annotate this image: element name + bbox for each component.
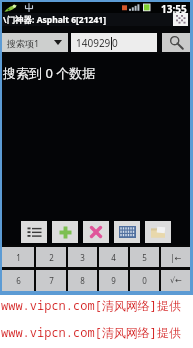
button[interactable]: 1 [2, 247, 34, 267]
button[interactable]: 4 [99, 247, 128, 267]
staticText: \门神器: Asphalt 6[21241] [3, 14, 106, 26]
button[interactable]: Menu [173, 13, 188, 26]
button[interactable]: √← [161, 270, 190, 291]
staticText: |← [170, 252, 182, 263]
staticText: 搜索项1 [7, 37, 40, 49]
staticText: 6 [16, 275, 21, 286]
staticText: 3 [80, 252, 85, 263]
staticText: 140929 [76, 36, 111, 50]
staticText: 9 [111, 275, 116, 286]
button[interactable]: 9 [99, 270, 128, 291]
staticText: www.vipcn.com[清风网络]提供 [1, 324, 193, 340]
button[interactable]: Delete [83, 221, 109, 243]
staticText: √← [170, 276, 182, 285]
button[interactable]: Save [145, 221, 171, 243]
button[interactable]: 5 [130, 247, 159, 267]
staticText: 搜索到 0 个数据 [3, 64, 96, 82]
staticText: 7 [49, 275, 54, 286]
button[interactable]: Search [162, 33, 190, 52]
button[interactable]: List [21, 221, 47, 243]
button[interactable]: 2 [36, 247, 66, 267]
staticText: www.vipcn.com[清风网络]提供 [1, 297, 193, 313]
button[interactable]: 7 [36, 270, 66, 291]
button[interactable]: Add [52, 221, 78, 243]
button[interactable]: 140929 [71, 33, 157, 52]
button[interactable]: |← [161, 247, 190, 267]
button[interactable]: 3 [68, 247, 97, 267]
staticText: 8 [80, 275, 85, 286]
button[interactable]: 8 [68, 270, 97, 291]
staticText: 13:55 [161, 2, 187, 13]
staticText: 1 [16, 252, 21, 263]
staticText: 0 [142, 275, 147, 286]
staticText: 2 [49, 252, 54, 263]
staticText: 4 [111, 252, 116, 263]
button[interactable]: Keyboard [114, 221, 140, 243]
button[interactable]: 6 [2, 270, 34, 291]
staticText: 0 [112, 36, 118, 50]
button[interactable]: 0 [130, 270, 159, 291]
button[interactable]: 搜索项1 [2, 33, 68, 52]
staticText: 5 [142, 252, 147, 263]
